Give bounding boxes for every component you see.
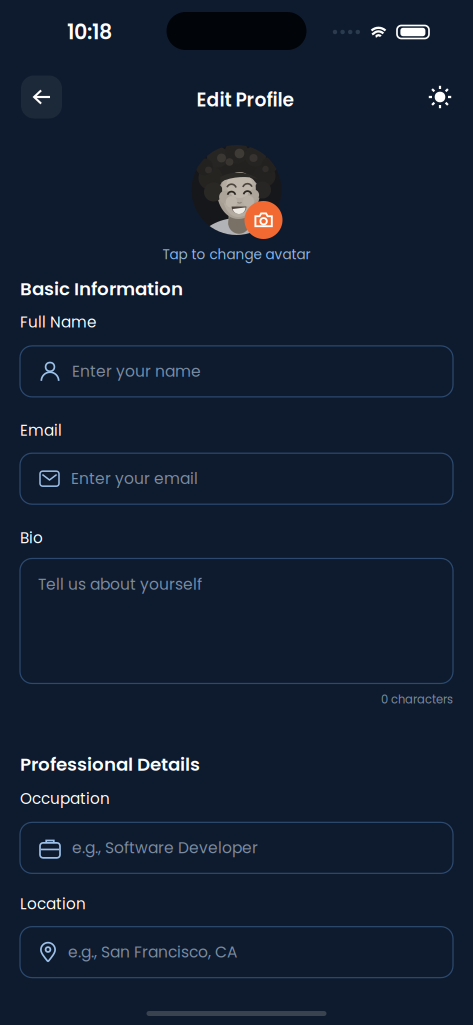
button[interactable]: Back <box>21 75 62 118</box>
staticText: e.g., Software Developer <box>72 837 258 859</box>
button[interactable]: Enter your name <box>20 346 453 397</box>
staticText: Tap to change avatar <box>162 245 310 264</box>
staticText: Full Name <box>20 312 96 333</box>
staticText: Enter your name <box>72 361 201 382</box>
staticText: 10:18 <box>67 17 112 46</box>
staticText: Enter your email <box>71 468 198 489</box>
button[interactable]: e.g., San Francisco, CA <box>20 927 453 978</box>
button[interactable]: Tell us about yourself <box>20 558 453 683</box>
button[interactable]: Toggle appearance <box>420 77 460 117</box>
button[interactable]: Tap to change avatar <box>162 145 310 264</box>
staticText: Professional Details <box>20 751 200 777</box>
button[interactable]: e.g., Software Developer <box>20 822 453 873</box>
button[interactable]: Enter your email <box>20 453 453 504</box>
staticText: Tell us about yourself <box>38 573 202 595</box>
staticText: Edit Profile <box>196 87 294 113</box>
staticText: Location <box>20 893 86 915</box>
staticText: Occupation <box>20 788 110 809</box>
staticText: 0 characters <box>381 691 453 708</box>
staticText: Basic Information <box>20 276 183 302</box>
staticText: e.g., San Francisco, CA <box>68 941 237 963</box>
staticText: Bio <box>20 527 43 548</box>
staticText: Email <box>20 420 62 441</box>
